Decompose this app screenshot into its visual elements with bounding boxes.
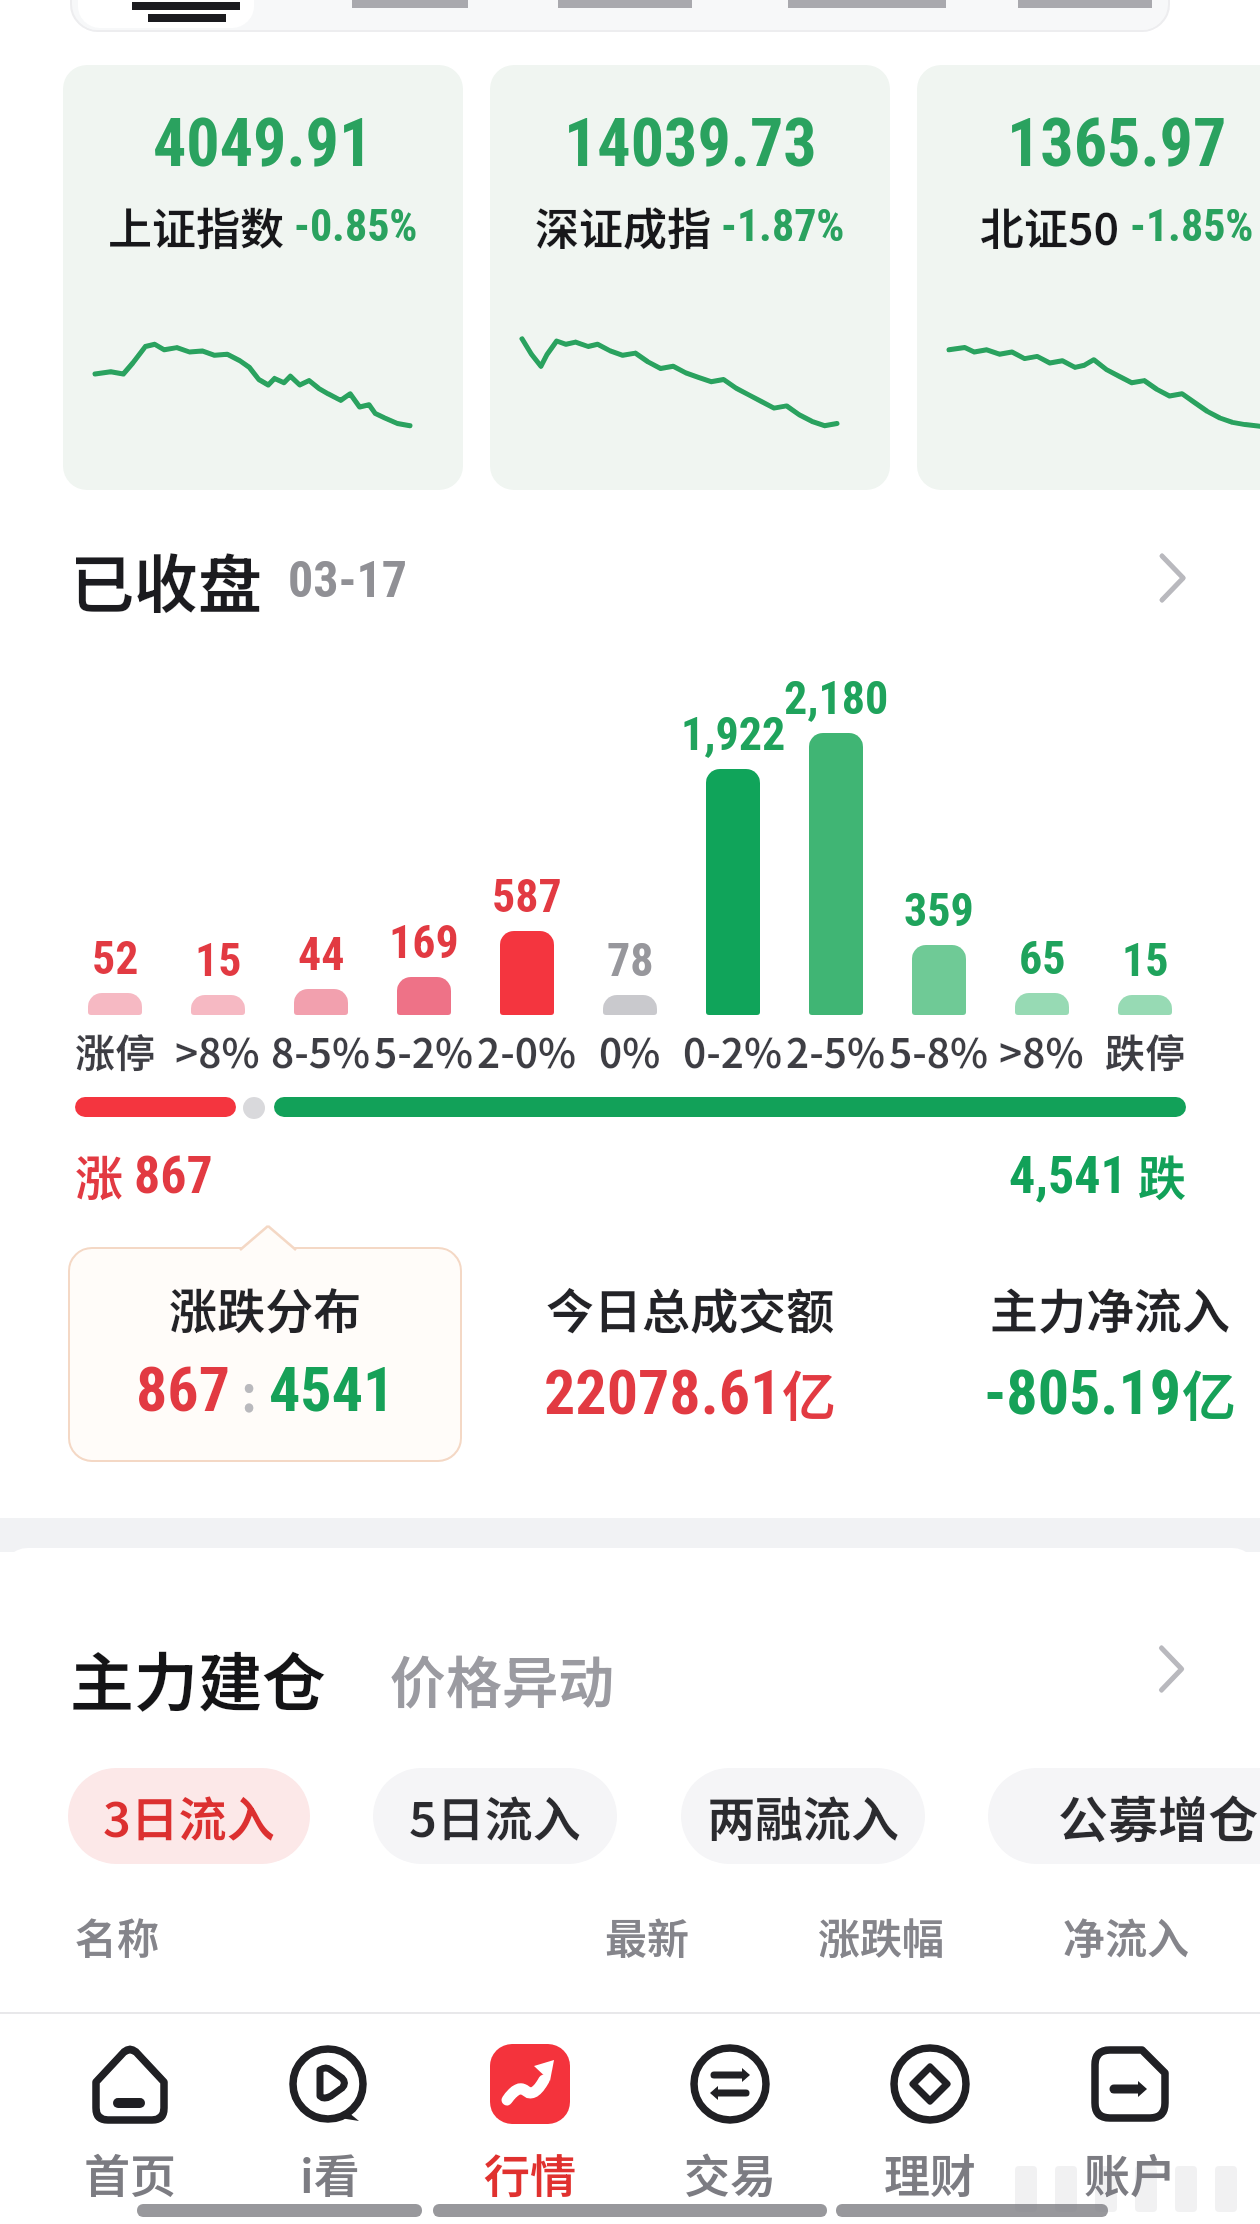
button[interactable]: 行情 bbox=[430, 2014, 630, 2204]
staticText: 公募增仓 bbox=[1058, 1780, 1258, 1852]
staticText: 行情 bbox=[484, 2140, 576, 2204]
staticText: 亿 bbox=[782, 1353, 836, 1431]
staticText: 5-8% bbox=[889, 1022, 988, 1072]
button[interactable]: 公募增仓 bbox=[988, 1768, 1260, 1864]
button[interactable]: 4049.91 bbox=[63, 65, 463, 490]
staticText: 5日流入 bbox=[409, 1781, 581, 1851]
staticText: 跌停 bbox=[1105, 1022, 1185, 1072]
staticText: 主力净流入 bbox=[990, 1273, 1231, 1343]
staticText: 0% bbox=[599, 1022, 661, 1072]
staticText: 3日流入 bbox=[103, 1781, 275, 1851]
button[interactable]: 3日流入 bbox=[68, 1768, 310, 1864]
staticText: 4,541 bbox=[1009, 1145, 1127, 1206]
staticText: i看 bbox=[300, 2140, 360, 2204]
staticText: 深证成指 bbox=[535, 194, 711, 258]
staticText: 8-5% bbox=[271, 1022, 370, 1072]
staticText: -1.87% bbox=[721, 200, 845, 252]
button[interactable]: 14039.73 bbox=[490, 65, 890, 490]
staticText: 5-2% bbox=[374, 1022, 473, 1072]
staticText: 价格异动 bbox=[390, 1638, 614, 1719]
staticText: 169 bbox=[389, 915, 459, 969]
staticText: 4541 bbox=[269, 1353, 395, 1426]
button[interactable]: 首页 bbox=[30, 2014, 230, 2204]
staticText: 03-17 bbox=[288, 551, 408, 610]
button[interactable]: 涨跌分布 bbox=[68, 1247, 462, 1462]
staticText: 587 bbox=[492, 869, 562, 923]
staticText: 最新 bbox=[605, 1905, 690, 1966]
staticText: 理财 bbox=[884, 2140, 976, 2204]
staticText: : bbox=[230, 1354, 269, 1426]
staticText: 52 bbox=[92, 931, 139, 985]
staticText: 涨跌分布 bbox=[169, 1273, 362, 1343]
button[interactable]: 理财 bbox=[830, 2014, 1030, 2204]
staticText: 15 bbox=[195, 933, 242, 987]
staticText: -0.85% bbox=[294, 200, 418, 252]
staticText: 1365.97 bbox=[1007, 105, 1227, 182]
staticText: 账户 bbox=[1084, 2140, 1176, 2204]
staticText: 跌 bbox=[1127, 1140, 1186, 1210]
staticText: 2,180 bbox=[784, 671, 889, 725]
staticText: 1,922 bbox=[681, 707, 786, 761]
staticText: >8% bbox=[999, 1022, 1084, 1072]
staticText: 78 bbox=[607, 933, 654, 987]
button[interactable]: 两融流入 bbox=[681, 1768, 925, 1864]
staticText: 2-0% bbox=[477, 1022, 576, 1072]
button[interactable]: 交易 bbox=[630, 2014, 830, 2204]
staticText: 涨跌幅 bbox=[818, 1905, 945, 1966]
staticText: 14039.73 bbox=[564, 105, 817, 182]
button[interactable]: 账户 bbox=[1030, 2014, 1230, 2204]
button[interactable]: 1365.97 bbox=[917, 65, 1260, 490]
staticText: 首页 bbox=[84, 2140, 176, 2204]
staticText: -805.19 bbox=[984, 1356, 1182, 1429]
staticText: 15 bbox=[1122, 933, 1169, 987]
staticText: 涨 bbox=[75, 1140, 134, 1210]
staticText: 上证指数 bbox=[108, 194, 284, 258]
staticText: 4049.91 bbox=[153, 105, 373, 182]
staticText: 0-2% bbox=[683, 1022, 782, 1072]
staticText: >8% bbox=[175, 1022, 260, 1072]
button[interactable]: 5日流入 bbox=[373, 1768, 617, 1864]
staticText: 65 bbox=[1019, 931, 1066, 985]
staticText: 22078.61 bbox=[544, 1356, 782, 1429]
button[interactable]: i看 bbox=[230, 2014, 430, 2204]
staticText: -1.85% bbox=[1130, 200, 1254, 252]
staticText: 867 bbox=[136, 1353, 230, 1426]
staticText: 已收盘 bbox=[70, 534, 262, 627]
staticText: 44 bbox=[298, 927, 345, 981]
staticText: 2-5% bbox=[786, 1022, 885, 1072]
button[interactable]: 主力建仓 bbox=[70, 1632, 614, 1725]
staticText: 867 bbox=[134, 1145, 213, 1206]
button[interactable]: 已收盘 bbox=[70, 534, 408, 627]
staticText: 涨停 bbox=[75, 1022, 155, 1072]
staticText: 主力建仓 bbox=[70, 1632, 326, 1725]
staticText: 北证50 bbox=[980, 194, 1120, 258]
staticText: 交易 bbox=[684, 2140, 776, 2204]
staticText: 359 bbox=[904, 883, 974, 937]
staticText: 两融流入 bbox=[707, 1781, 900, 1851]
staticText: 今日总成交额 bbox=[546, 1273, 835, 1343]
staticText: 净流入 bbox=[1063, 1905, 1190, 1966]
staticText: 亿 bbox=[1182, 1353, 1236, 1431]
staticText: 名称 bbox=[75, 1905, 160, 1966]
